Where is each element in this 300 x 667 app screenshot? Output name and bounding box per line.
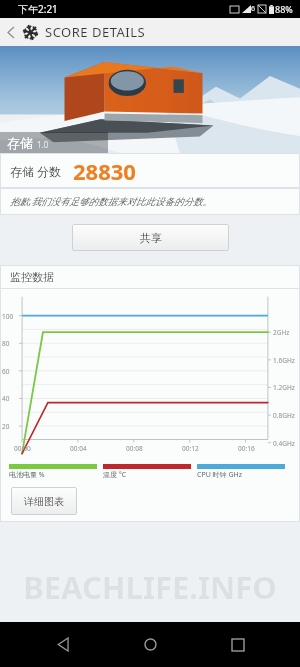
staticText: 20 [2, 422, 10, 431]
button[interactable]: Back [0, 18, 22, 46]
staticText: 00:00 [14, 444, 31, 453]
staticText: 6 [251, 4, 256, 14]
staticText: 60 [2, 367, 10, 376]
button[interactable]: 详细图表 [11, 487, 77, 515]
staticText: 详细图表 [24, 495, 64, 508]
staticText: 00:04 [70, 444, 87, 453]
staticText: 监控数据 [10, 270, 54, 284]
staticText: 0.8GHz [273, 411, 295, 420]
staticText: 1.0 [37, 139, 49, 150]
staticText: 40 [2, 394, 10, 403]
staticText: 28830 [73, 156, 136, 186]
button[interactable]: Back [38, 622, 88, 667]
staticText: 80 [2, 339, 10, 348]
staticText: 存储 [7, 135, 33, 151]
staticText: 1.6GHz [273, 356, 295, 365]
button[interactable]: 存储 [0, 46, 300, 153]
button[interactable]: Recents [213, 622, 263, 667]
staticText: CPU 时钟 GHz [197, 470, 242, 480]
button[interactable]: Home [125, 622, 175, 667]
staticText: 电池电量 % [9, 470, 45, 480]
staticText: 100 [2, 312, 14, 321]
staticText: 共享 [140, 231, 162, 245]
staticText: SCORE DETAILS [45, 23, 146, 41]
staticText: 存储 分数 [10, 163, 62, 179]
button[interactable]: 共享 [72, 224, 229, 251]
staticText: 00:16 [238, 444, 255, 453]
staticText: 0.4GHz [273, 439, 295, 448]
staticText: 2GHz [273, 328, 290, 337]
staticText: 88% [275, 3, 293, 15]
staticText: 抱歉,我们没有足够的数据来对比此设备的分数。 [10, 195, 212, 208]
staticText: 下午2:21 [18, 2, 58, 16]
staticText: BEACHLIFE.INFO [0, 566, 300, 608]
staticText: 1.2GHz [273, 383, 295, 392]
staticText: 00:08 [126, 444, 143, 453]
staticText: 00:12 [182, 444, 199, 453]
staticText: 温度 °C [103, 470, 127, 480]
